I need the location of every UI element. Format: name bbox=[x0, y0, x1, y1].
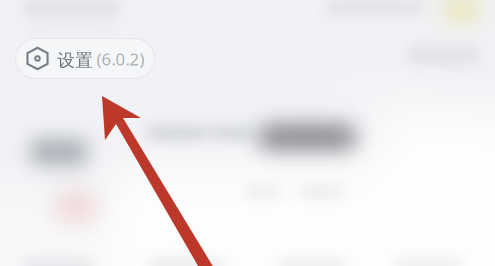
staticText: (6.0.2) bbox=[97, 48, 145, 70]
staticText: 设置 bbox=[57, 49, 93, 72]
button[interactable]: 设置 bbox=[15, 38, 155, 78]
